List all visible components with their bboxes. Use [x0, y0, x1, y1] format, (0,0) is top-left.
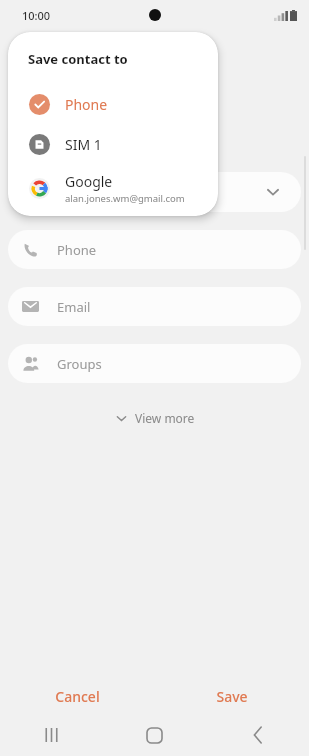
other: Expand account	[265, 184, 281, 200]
button[interactable]: Back	[206, 714, 309, 756]
staticText: alan.jones.wm@gmail.com	[65, 192, 185, 205]
staticText: Phone	[65, 95, 108, 114]
staticText: SIM 1	[65, 135, 102, 154]
button[interactable]: Phone	[8, 84, 218, 124]
button[interactable]: SIM 1	[8, 124, 218, 164]
button[interactable]: Email	[8, 287, 301, 326]
staticText: Phone	[57, 241, 97, 259]
button[interactable]: Phone	[8, 230, 301, 269]
staticText: View more	[135, 410, 195, 426]
button[interactable]: Recents	[0, 714, 103, 756]
staticText: Save contact to	[28, 50, 128, 68]
button[interactable]: Save	[154, 678, 309, 714]
staticText: Cancel	[55, 687, 100, 706]
button[interactable]: Cancel	[0, 678, 154, 714]
staticText: Google	[65, 172, 113, 191]
staticText: Save	[216, 687, 248, 706]
button[interactable]: Expand account	[8, 172, 301, 212]
button[interactable]: View more	[105, 405, 205, 431]
staticText: Groups	[57, 355, 102, 373]
button[interactable]: Google	[8, 164, 218, 212]
button[interactable]: Groups	[8, 344, 301, 383]
staticText: 10:00	[22, 8, 51, 23]
button[interactable]: Home	[103, 714, 206, 756]
staticText: Email	[57, 298, 91, 316]
